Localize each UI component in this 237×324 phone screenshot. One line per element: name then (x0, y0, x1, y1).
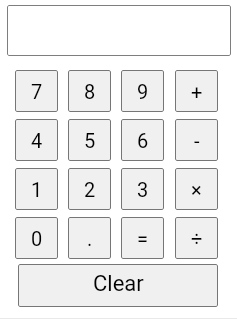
staticText: 0 (31, 227, 43, 250)
staticText: 5 (84, 129, 96, 152)
staticText: 4 (31, 129, 43, 152)
staticText: 6 (137, 129, 149, 152)
button[interactable]: Clear (18, 264, 218, 307)
button[interactable]: - (175, 119, 218, 161)
staticText: 8 (84, 80, 96, 103)
staticText: - (194, 129, 200, 152)
staticText: = (137, 227, 148, 250)
staticText: + (191, 80, 203, 103)
button[interactable]: 0 (15, 217, 58, 259)
staticText: 1 (31, 178, 43, 201)
staticText: 3 (137, 178, 149, 201)
staticText: 7 (31, 80, 43, 103)
button[interactable]: 8 (68, 70, 111, 112)
button[interactable]: 3 (121, 168, 164, 210)
button[interactable]: × (175, 168, 218, 210)
staticText: . (87, 227, 93, 250)
staticText: 9 (137, 80, 149, 103)
button[interactable]: 2 (68, 168, 111, 210)
button[interactable]: ÷ (175, 217, 218, 259)
staticText: ÷ (191, 227, 203, 250)
staticText: × (191, 178, 202, 201)
button[interactable]: 7 (15, 70, 58, 112)
button[interactable]: 5 (68, 119, 111, 161)
button[interactable]: + (175, 70, 218, 112)
button[interactable]: 4 (15, 119, 58, 161)
button[interactable]: 1 (15, 168, 58, 210)
button[interactable]: 9 (121, 70, 164, 112)
staticText: 2 (84, 178, 96, 201)
button[interactable]: 6 (121, 119, 164, 161)
button[interactable]: . (68, 217, 111, 259)
staticText: Clear (93, 271, 144, 297)
button[interactable] (7, 5, 231, 56)
button[interactable]: = (121, 217, 164, 259)
